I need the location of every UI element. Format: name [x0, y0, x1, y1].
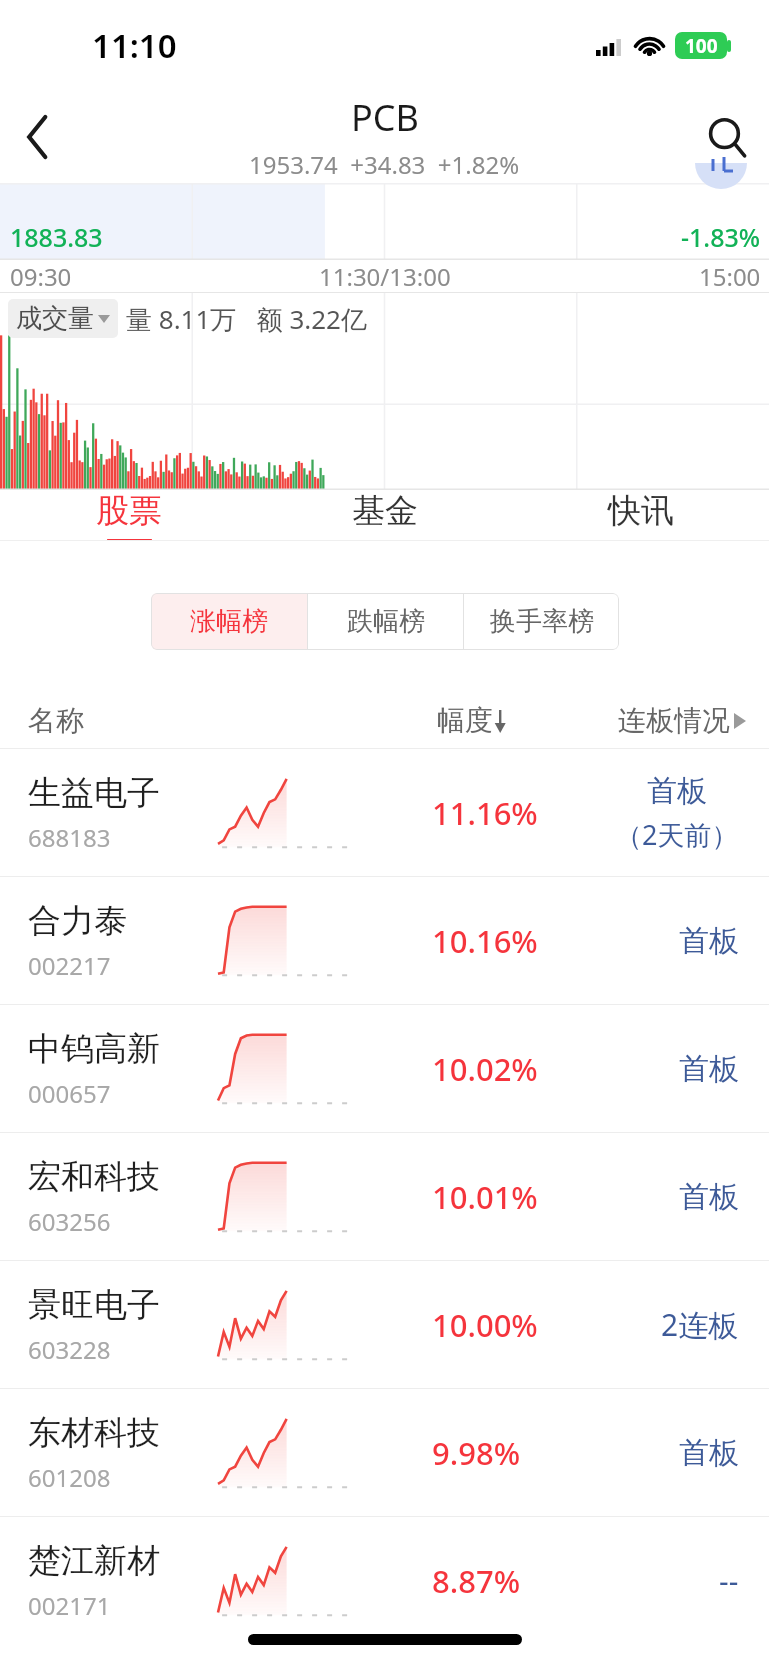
- button[interactable]: 换手率榜: [464, 593, 619, 650]
- staticText: 宏和科技: [28, 1156, 160, 1198]
- staticText: 涨幅榜: [190, 605, 268, 638]
- button[interactable]: 楚江新材: [0, 1517, 769, 1644]
- staticText: 首板: [679, 1434, 739, 1472]
- staticText: 603228: [28, 1333, 111, 1366]
- staticText: （2天前）: [615, 816, 739, 853]
- staticText: 基金: [352, 490, 418, 532]
- staticText: 东材科技: [28, 1412, 160, 1454]
- staticText: 首板: [679, 922, 739, 960]
- staticText: 首板: [679, 1178, 739, 1216]
- staticText: 11.16%: [432, 792, 538, 834]
- staticText: 2连板: [661, 1304, 739, 1345]
- button[interactable]: 宏和科技: [0, 1133, 769, 1260]
- staticText: 601208: [28, 1461, 111, 1494]
- staticText: -1.83%: [681, 220, 761, 254]
- button[interactable]: 涨幅榜: [151, 593, 307, 650]
- staticText: 100: [685, 33, 718, 59]
- button[interactable]: 合力泰: [0, 877, 769, 1004]
- staticText: --: [719, 1560, 739, 1601]
- staticText: 换手率榜: [490, 605, 594, 638]
- button[interactable]: 跌幅榜: [308, 593, 463, 650]
- staticText: 9.98%: [432, 1432, 521, 1474]
- staticText: 1883.83: [10, 220, 103, 254]
- staticText: 11:10: [92, 23, 177, 68]
- staticText: 楚江新材: [28, 1540, 160, 1582]
- staticText: 603256: [28, 1205, 111, 1238]
- staticText: 景旺电子: [28, 1284, 160, 1326]
- staticText: 1953.74 +34.83 +1.82%: [249, 148, 520, 181]
- staticText: 688183: [28, 821, 111, 854]
- button[interactable]: 生益电子: [0, 749, 769, 876]
- button[interactable]: 中钨高新: [0, 1005, 769, 1132]
- staticText: 名称: [28, 703, 84, 738]
- staticText: 8.87%: [432, 1560, 521, 1602]
- button[interactable]: 连板情况: [618, 703, 747, 738]
- staticText: 成交量: [16, 302, 94, 335]
- staticText: 15:00: [699, 260, 761, 293]
- button[interactable]: 景旺电子: [0, 1261, 769, 1388]
- staticText: 11:30/13:00: [319, 260, 451, 293]
- staticText: 股票: [96, 490, 162, 532]
- button[interactable]: 基金: [257, 490, 513, 540]
- staticText: 10.01%: [432, 1176, 538, 1218]
- button[interactable]: Back: [0, 99, 76, 175]
- button[interactable]: 股票: [0, 490, 257, 540]
- button[interactable]: Search: [685, 95, 769, 179]
- staticText: 000657: [28, 1077, 111, 1110]
- staticText: 跌幅榜: [347, 605, 425, 638]
- button[interactable]: 东材科技: [0, 1389, 769, 1516]
- staticText: 中钨高新: [28, 1028, 160, 1070]
- staticText: 002171: [28, 1589, 111, 1622]
- staticText: 快讯: [608, 490, 674, 532]
- staticText: 09:30: [10, 260, 72, 293]
- staticText: 合力泰: [28, 900, 127, 942]
- staticText: PCB: [351, 93, 419, 142]
- staticText: 10.02%: [432, 1048, 538, 1090]
- staticText: 10.16%: [432, 920, 538, 962]
- staticText: 生益电子: [28, 772, 160, 814]
- staticText: 连板情况: [618, 703, 730, 738]
- staticText: 10.00%: [432, 1304, 538, 1346]
- staticText: 首板: [647, 772, 707, 810]
- button[interactable]: 成交量: [8, 299, 118, 338]
- button[interactable]: 快讯: [513, 490, 769, 540]
- staticText: 量 8.11万 额 3.22亿: [126, 301, 367, 337]
- staticText: 首板: [679, 1050, 739, 1088]
- staticText: 幅度: [437, 703, 493, 738]
- staticText: 002217: [28, 949, 111, 982]
